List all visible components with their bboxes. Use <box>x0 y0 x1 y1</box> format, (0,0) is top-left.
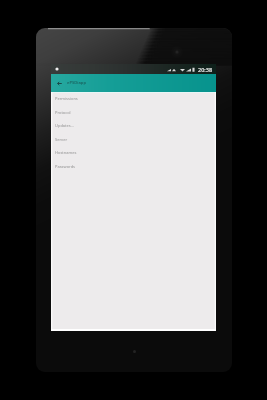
button[interactable]: Updates... <box>51 118 216 132</box>
button[interactable]: Server <box>51 132 216 146</box>
staticText: Server <box>55 137 68 142</box>
button[interactable]: Navigate up <box>51 74 67 92</box>
staticText: Permissions <box>55 96 78 101</box>
staticText: Updates... <box>55 123 74 128</box>
button[interactable]: Permissions <box>51 91 216 105</box>
staticText: Hostnames <box>55 150 77 155</box>
staticText: Protocol <box>55 110 71 115</box>
button[interactable]: Passwords <box>51 159 216 173</box>
button[interactable]: Hostnames <box>51 145 216 159</box>
button[interactable]: Protocol <box>51 105 216 119</box>
staticText: 20:38 <box>198 66 213 73</box>
staticText: ePSDiapp <box>67 80 87 86</box>
staticText: Passwords <box>55 164 76 169</box>
